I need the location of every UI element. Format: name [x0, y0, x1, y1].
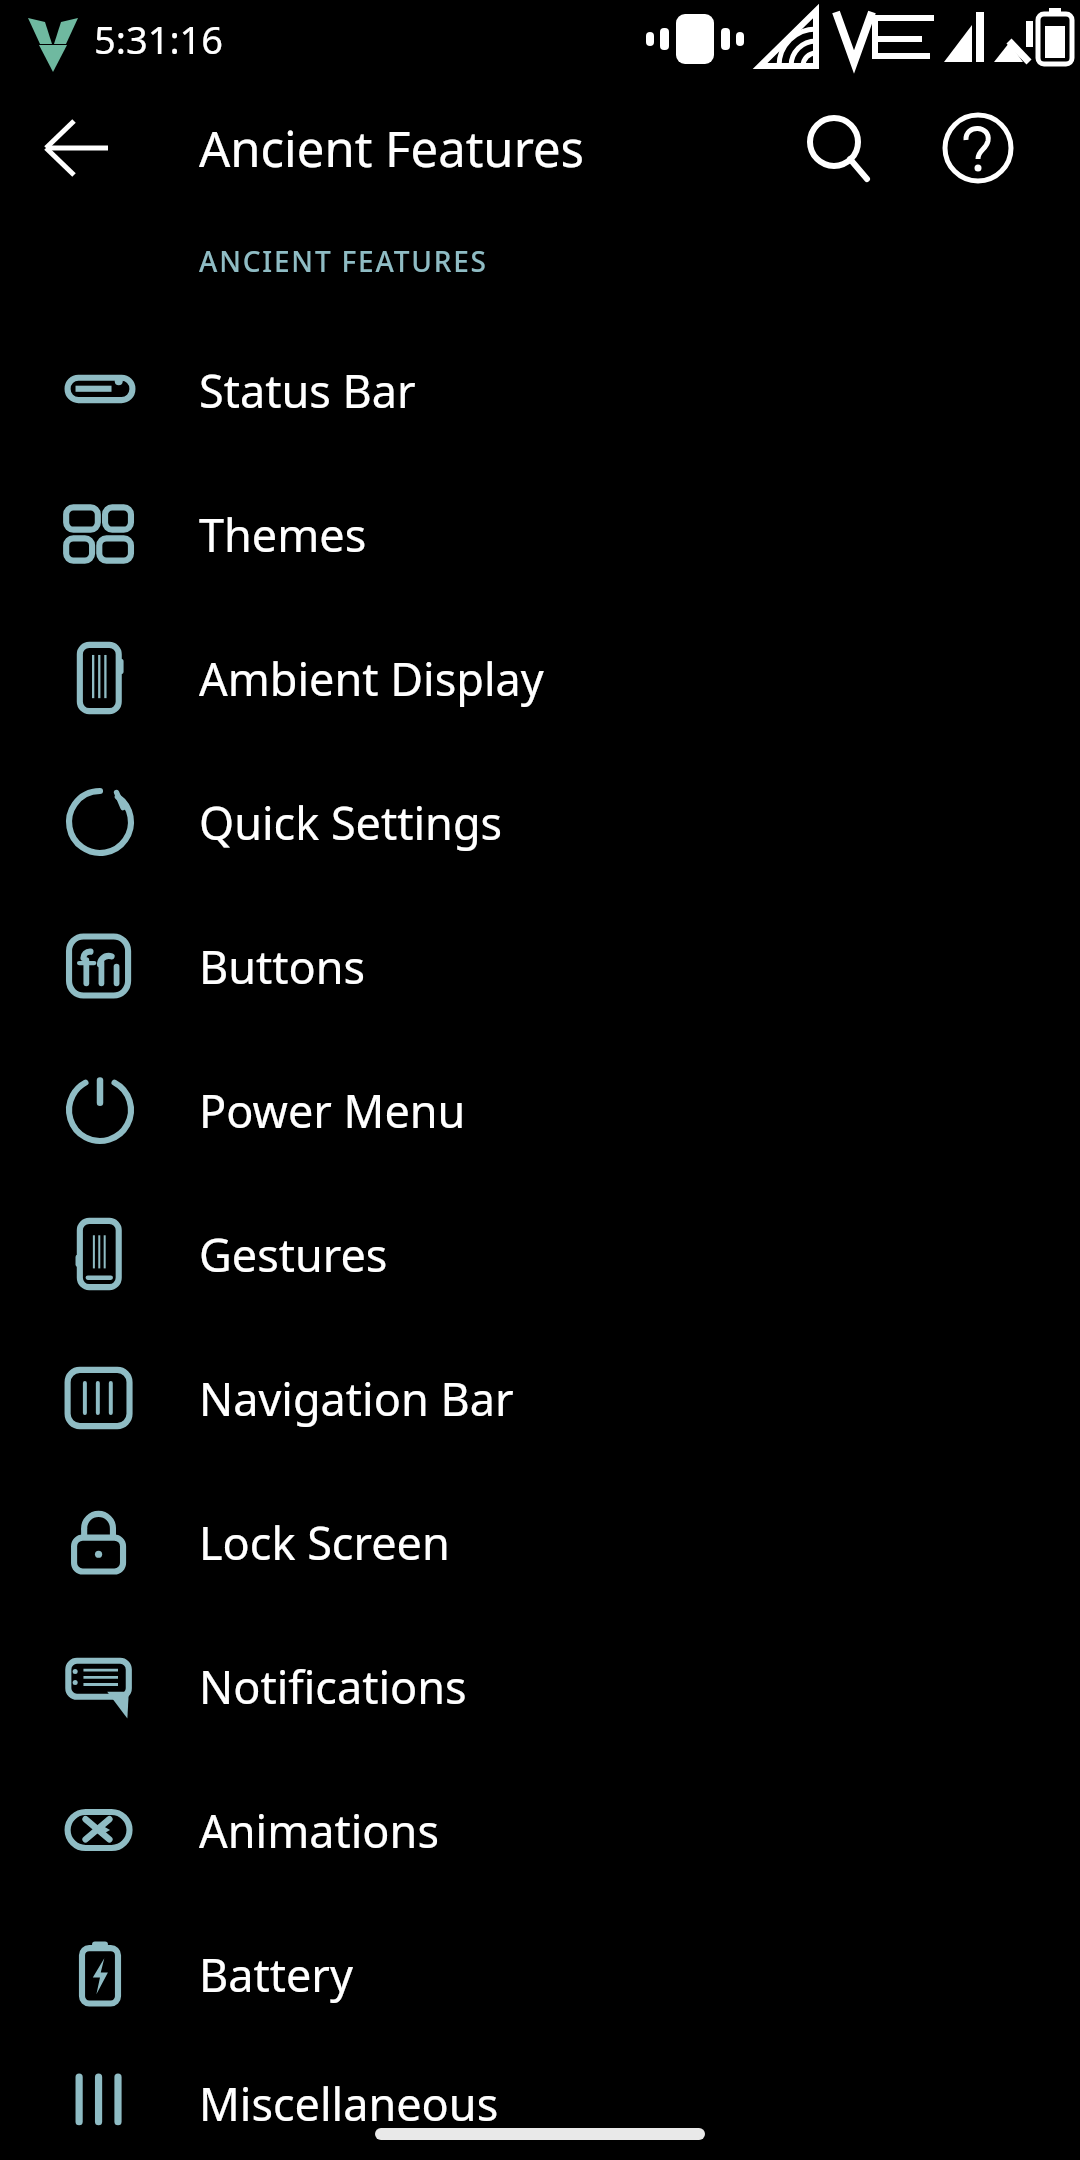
- button[interactable]: Back: [32, 102, 124, 194]
- button[interactable]: Search: [792, 102, 884, 194]
- staticText: 5:31:16: [94, 13, 224, 65]
- staticText: Ancient Features: [199, 115, 584, 182]
- button[interactable]: Power Menu: [0, 1038, 1080, 1182]
- button[interactable]: Help: [932, 102, 1024, 194]
- staticText: Buttons: [199, 936, 366, 997]
- staticText: Lock Screen: [199, 1512, 450, 1573]
- button[interactable]: Animations: [0, 1758, 1080, 1902]
- staticText: Notifications: [199, 1656, 467, 1717]
- staticText: Status Bar: [199, 360, 416, 421]
- staticText: Gestures: [199, 1224, 388, 1285]
- staticText: Animations: [199, 1800, 439, 1861]
- button[interactable]: Gestures: [0, 1182, 1080, 1326]
- button[interactable]: Themes: [0, 462, 1080, 606]
- staticText: Navigation Bar: [199, 1368, 514, 1429]
- staticText: Battery: [199, 1944, 353, 2005]
- button[interactable]: Navigation Bar: [0, 1326, 1080, 1470]
- staticText: Themes: [199, 504, 367, 565]
- staticText: Miscellaneous: [199, 2073, 499, 2134]
- staticText: Quick Settings: [199, 792, 503, 853]
- button[interactable]: Notifications: [0, 1614, 1080, 1758]
- staticText: Ambient Display: [199, 648, 544, 709]
- button[interactable]: Lock Screen: [0, 1470, 1080, 1614]
- button[interactable]: Miscellaneous: [0, 2046, 1080, 2160]
- button[interactable]: Status Bar: [0, 318, 1080, 462]
- button[interactable]: Ambient Display: [0, 606, 1080, 750]
- button[interactable]: Buttons: [0, 894, 1080, 1038]
- staticText: ANCIENT FEATURES: [199, 242, 488, 280]
- staticText: Power Menu: [199, 1080, 466, 1141]
- button[interactable]: Battery: [0, 1902, 1080, 2046]
- button[interactable]: Quick Settings: [0, 750, 1080, 894]
